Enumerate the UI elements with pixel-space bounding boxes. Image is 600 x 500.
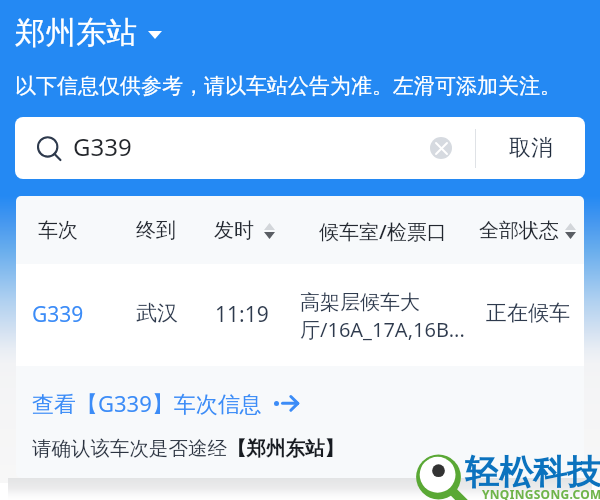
staticText: 武汉	[136, 300, 178, 326]
staticText: 取消	[509, 134, 553, 162]
staticText: 查看【G339】车次信息	[32, 388, 262, 418]
button[interactable]: G339	[16, 264, 584, 366]
staticText: G339	[32, 300, 84, 329]
staticText: 发时	[214, 218, 254, 243]
button[interactable]: 取消	[476, 117, 585, 179]
staticText: 车次	[38, 218, 78, 243]
staticText: 高架层候车大 厅/16A_17A,16B...	[300, 290, 465, 343]
staticText: G339	[73, 130, 132, 163]
button[interactable]: 查看【G339】车次信息	[32, 388, 284, 418]
staticText: 郑州东站	[15, 14, 137, 52]
staticText: 请确认该车次是否途经	[32, 436, 227, 461]
staticText: YNQINGSONG.COM	[482, 486, 600, 500]
button[interactable]: 郑州东站	[15, 14, 162, 52]
staticText: 终到	[136, 218, 176, 243]
staticText: 以下信息仅供参考，请以车站公告为准。左滑可添加关注。	[15, 73, 561, 99]
staticText: 11:19	[215, 300, 269, 329]
staticText: 全部状态	[479, 218, 559, 243]
staticText: 候车室/检票口	[319, 218, 447, 245]
staticText: 【郑州东站】	[227, 436, 344, 461]
button[interactable]: Clear search	[430, 137, 452, 159]
staticText: 正在候车	[486, 300, 570, 326]
staticText: 轻松科技	[465, 451, 600, 494]
